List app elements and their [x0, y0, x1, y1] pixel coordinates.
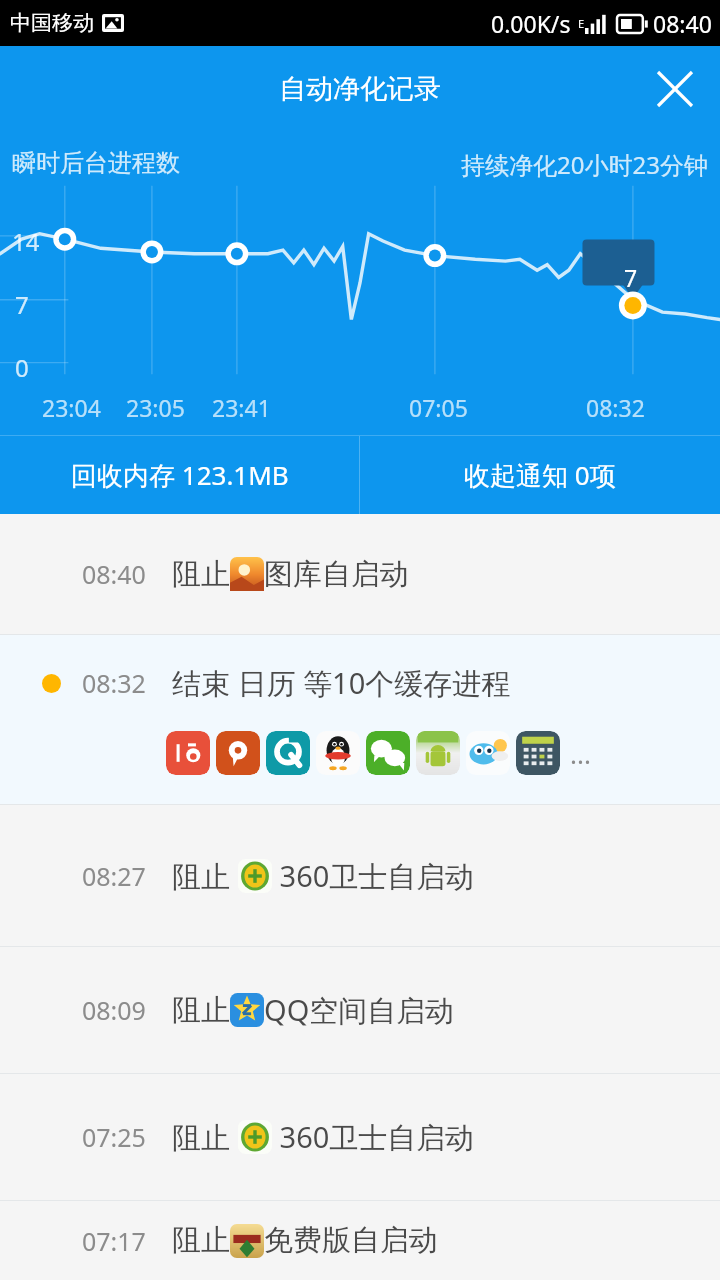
staticText: 23:05 [126, 392, 185, 423]
staticText: 7 [624, 262, 638, 293]
staticText: 中国移动 [10, 10, 94, 36]
staticText: 08:32 [82, 666, 146, 700]
staticText: 23:41 [212, 392, 271, 423]
staticText: 23:04 [42, 392, 101, 423]
staticText: 免费版自启动 [264, 1222, 438, 1259]
staticText: 07:25 [82, 1120, 146, 1154]
staticText: 持续净化20小时23分钟 [461, 148, 708, 181]
staticText: ... [570, 736, 591, 771]
staticText: 瞬时后台进程数 [12, 148, 180, 178]
staticText: 收起通知 0项 [464, 457, 616, 493]
staticText: 0.00K/s [491, 8, 571, 39]
staticText: 回收内存 123.1MB [71, 457, 289, 493]
staticText: 阻止 [172, 1117, 238, 1157]
button[interactable]: 收起通知 0项 [360, 436, 720, 514]
staticText: 阻止 [172, 556, 230, 593]
button[interactable]: 08:09 [0, 947, 720, 1073]
staticText: 07:05 [409, 392, 468, 423]
staticText: 结束 日历 等10个缓存进程 [172, 663, 511, 703]
staticText: 7 [15, 288, 29, 321]
staticText: 阻止 [172, 992, 230, 1029]
staticText: 08:32 [586, 392, 645, 423]
staticText: 阻止 [172, 856, 238, 896]
staticText: 08:27 [82, 859, 146, 893]
button[interactable]: 回收内存 123.1MB [0, 436, 359, 514]
staticText: 08:40 [82, 557, 146, 591]
staticText: 08:40 [653, 8, 712, 39]
button[interactable]: 08:32 [0, 635, 720, 804]
staticText: 07:17 [82, 1224, 146, 1258]
staticText: 360卫士自启动 [272, 856, 475, 896]
staticText: 0 [15, 351, 29, 384]
staticText: E [578, 16, 585, 31]
button[interactable]: 08:27 [0, 805, 720, 946]
button[interactable]: 07:25 [0, 1074, 720, 1200]
button[interactable]: 07:17 [0, 1201, 720, 1280]
staticText: 图库自启动 [264, 556, 409, 593]
staticText: 360卫士自启动 [272, 1117, 475, 1157]
staticText: 08:09 [82, 993, 146, 1027]
button[interactable]: Close [644, 58, 706, 120]
button[interactable]: 08:40 [0, 514, 720, 634]
staticText: 阻止 [172, 1222, 230, 1259]
staticText: QQ空间自启动 [264, 990, 455, 1030]
staticText: 14 [12, 225, 40, 258]
staticText: 自动净化记录 [279, 72, 441, 106]
